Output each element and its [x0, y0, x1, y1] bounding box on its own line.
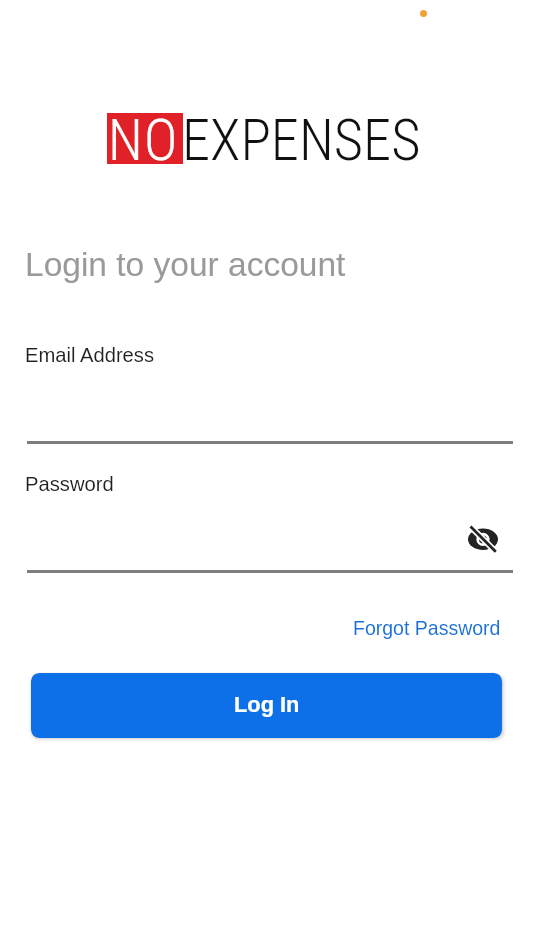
- staticText: Password: [25, 473, 114, 496]
- staticText: Email Address: [25, 344, 155, 367]
- staticText: NO: [108, 108, 179, 174]
- staticText: EXPENSES: [182, 108, 421, 174]
- button[interactable]: [27, 510, 513, 573]
- staticText: Forgot Password: [353, 617, 501, 639]
- button[interactable]: Forgot Password: [353, 617, 501, 639]
- button[interactable]: [27, 381, 513, 444]
- staticText: Log In: [234, 692, 300, 716]
- staticText: Login to your account: [25, 246, 346, 283]
- button[interactable]: Log In: [31, 673, 502, 738]
- button[interactable]: [462, 518, 504, 560]
